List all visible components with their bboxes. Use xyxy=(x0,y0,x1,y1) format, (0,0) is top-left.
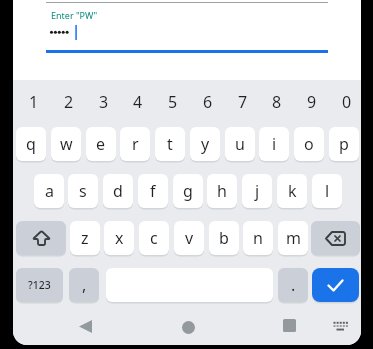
button[interactable]: m xyxy=(278,221,308,255)
button[interactable]: k xyxy=(277,174,307,208)
staticText: a xyxy=(45,180,54,202)
button[interactable]: y xyxy=(190,127,220,161)
button[interactable]: t xyxy=(155,127,185,161)
button[interactable]: i xyxy=(259,127,289,161)
button[interactable]: h xyxy=(207,174,237,208)
button[interactable]: 2 xyxy=(54,80,84,124)
staticText: l xyxy=(325,180,330,202)
staticText: 1 xyxy=(29,91,39,113)
staticText: x xyxy=(115,227,124,249)
staticText: 4 xyxy=(133,91,143,113)
button[interactable]: 3 xyxy=(89,80,119,124)
button[interactable] xyxy=(283,319,296,332)
button[interactable] xyxy=(16,221,66,255)
staticText: h xyxy=(217,180,227,202)
button[interactable] xyxy=(79,320,92,333)
button[interactable]: 1 xyxy=(19,80,49,124)
button[interactable]: b xyxy=(209,221,239,255)
staticText: 5 xyxy=(168,91,178,113)
button[interactable]: c xyxy=(139,221,169,255)
staticText: ?123 xyxy=(28,278,51,292)
button[interactable]: o xyxy=(294,127,324,161)
button[interactable]: 5 xyxy=(158,80,188,124)
button[interactable] xyxy=(312,268,359,302)
button[interactable]: v xyxy=(174,221,204,255)
button[interactable]: 0 xyxy=(332,80,361,124)
button[interactable]: r xyxy=(120,127,150,161)
button[interactable]: x xyxy=(104,221,134,255)
button[interactable] xyxy=(182,321,195,334)
staticText: r xyxy=(132,133,139,155)
staticText: 8 xyxy=(272,91,282,113)
button[interactable]: 8 xyxy=(262,80,292,124)
staticText: Enter "PW" xyxy=(51,9,98,21)
staticText: u xyxy=(235,133,245,155)
staticText: s xyxy=(79,180,87,202)
staticText: . xyxy=(291,274,296,296)
staticText: p xyxy=(339,133,349,155)
button[interactable]: w xyxy=(51,127,81,161)
button[interactable]: q xyxy=(16,127,46,161)
button[interactable]: 4 xyxy=(123,80,153,124)
button[interactable]: a xyxy=(34,174,64,208)
staticText: t xyxy=(167,133,173,155)
staticText: 6 xyxy=(203,91,213,113)
staticText: k xyxy=(288,180,297,202)
button[interactable]: e xyxy=(86,127,116,161)
button[interactable]: , xyxy=(69,268,99,302)
staticText: i xyxy=(272,133,277,155)
button[interactable]: 7 xyxy=(228,80,258,124)
staticText: d xyxy=(113,180,123,202)
button[interactable]: g xyxy=(173,174,203,208)
staticText: 7 xyxy=(238,91,248,113)
staticText: 9 xyxy=(307,91,317,113)
button[interactable]: p xyxy=(329,127,359,161)
button[interactable]: u xyxy=(225,127,255,161)
button[interactable]: z xyxy=(70,221,100,255)
button[interactable]: . xyxy=(278,268,308,302)
staticText: 2 xyxy=(64,91,74,113)
button[interactable] xyxy=(332,320,349,333)
staticText: q xyxy=(26,133,36,155)
staticText: e xyxy=(96,133,106,155)
staticText: v xyxy=(185,227,194,249)
staticText: 0 xyxy=(342,91,352,113)
staticText: j xyxy=(255,180,260,202)
staticText: , xyxy=(82,274,87,296)
button[interactable] xyxy=(311,221,360,255)
button[interactable]: s xyxy=(68,174,98,208)
button[interactable]: j xyxy=(242,174,272,208)
button[interactable]: 9 xyxy=(297,80,327,124)
staticText: o xyxy=(304,133,314,155)
staticText: g xyxy=(183,180,193,202)
staticText: z xyxy=(81,227,89,249)
staticText: w xyxy=(60,133,73,155)
button[interactable]: d xyxy=(103,174,133,208)
button[interactable]: 6 xyxy=(193,80,223,124)
staticText: 3 xyxy=(99,91,109,113)
button[interactable]: l xyxy=(312,174,342,208)
button[interactable]: f xyxy=(138,174,168,208)
button[interactable]: n xyxy=(243,221,273,255)
button[interactable]: ?123 xyxy=(16,268,63,302)
staticText: c xyxy=(150,227,158,249)
staticText: y xyxy=(201,133,210,155)
staticText: n xyxy=(253,227,263,249)
staticText: b xyxy=(219,227,229,249)
staticText: f xyxy=(150,180,156,202)
staticText: m xyxy=(286,227,301,249)
